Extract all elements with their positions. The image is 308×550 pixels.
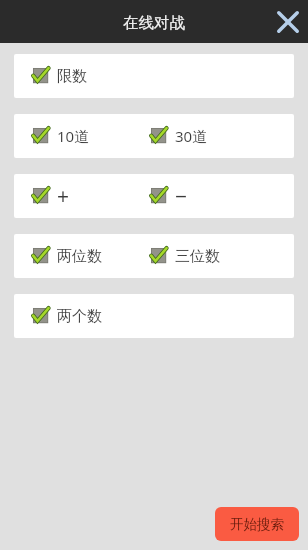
- staticText: 两位数: [57, 247, 102, 266]
- button[interactable]: 限数: [32, 54, 93, 98]
- button[interactable]: 两位数: [32, 234, 108, 278]
- button[interactable]: 两个数: [32, 294, 108, 338]
- button[interactable]: Close: [270, 4, 306, 40]
- button[interactable]: −: [150, 174, 194, 218]
- button[interactable]: 三位数: [150, 234, 226, 278]
- staticText: 30道: [175, 126, 208, 146]
- staticText: 两个数: [57, 307, 102, 326]
- staticText: 限数: [57, 67, 87, 86]
- staticText: 三位数: [175, 247, 220, 266]
- staticText: 开始搜索: [230, 516, 284, 533]
- staticText: 在线对战: [123, 13, 185, 33]
- button[interactable]: +: [32, 174, 76, 218]
- button[interactable]: 开始搜索: [215, 507, 299, 541]
- staticText: −: [175, 182, 188, 211]
- button[interactable]: 10道: [32, 114, 96, 158]
- staticText: +: [57, 182, 70, 211]
- button[interactable]: 30道: [150, 114, 214, 158]
- staticText: 10道: [57, 126, 90, 146]
